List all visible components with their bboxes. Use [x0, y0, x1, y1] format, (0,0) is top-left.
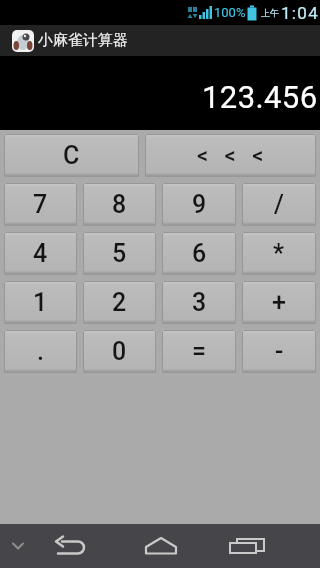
button[interactable]: C: [4, 134, 139, 177]
staticText: 100%: [214, 5, 246, 20]
button[interactable]: 2: [83, 281, 156, 324]
staticText: 7: [33, 190, 48, 219]
button[interactable]: 3: [162, 281, 236, 324]
button[interactable]: 7: [4, 183, 77, 226]
staticText: 5: [112, 239, 127, 268]
button[interactable]: 1: [4, 281, 77, 324]
button[interactable]: 6: [162, 232, 236, 275]
button[interactable]: *: [242, 232, 316, 275]
button[interactable]: < < <: [145, 134, 316, 177]
staticText: 2: [112, 288, 127, 317]
staticText: .: [37, 337, 44, 366]
staticText: +: [272, 288, 286, 317]
staticText: 小麻雀计算器: [38, 31, 128, 50]
staticText: 1:04: [281, 3, 319, 23]
staticText: -: [275, 337, 284, 366]
staticText: 0: [112, 337, 127, 366]
button[interactable]: 0: [83, 330, 156, 373]
button[interactable]: 5: [83, 232, 156, 275]
staticText: 3: [192, 288, 207, 317]
staticText: *: [273, 239, 285, 268]
button[interactable]: /: [242, 183, 316, 226]
staticText: /: [274, 190, 284, 219]
button[interactable]: .: [4, 330, 77, 373]
staticText: 6: [192, 239, 207, 268]
staticText: C: [63, 141, 80, 170]
staticText: 1: [33, 288, 48, 317]
button[interactable]: [141, 524, 181, 568]
staticText: 123.456: [202, 79, 318, 115]
staticText: < < <: [197, 143, 264, 169]
button[interactable]: [52, 524, 90, 568]
button[interactable]: [227, 524, 267, 568]
staticText: 9: [192, 190, 207, 219]
button[interactable]: +: [242, 281, 316, 324]
button[interactable]: 4: [4, 232, 77, 275]
staticText: 上午: [261, 7, 279, 18]
staticText: =: [192, 337, 206, 366]
button[interactable]: 9: [162, 183, 236, 226]
button[interactable]: -: [242, 330, 316, 373]
button[interactable]: 8: [83, 183, 156, 226]
staticText: 8: [112, 190, 127, 219]
staticText: 4: [33, 239, 48, 268]
button[interactable]: =: [162, 330, 236, 373]
